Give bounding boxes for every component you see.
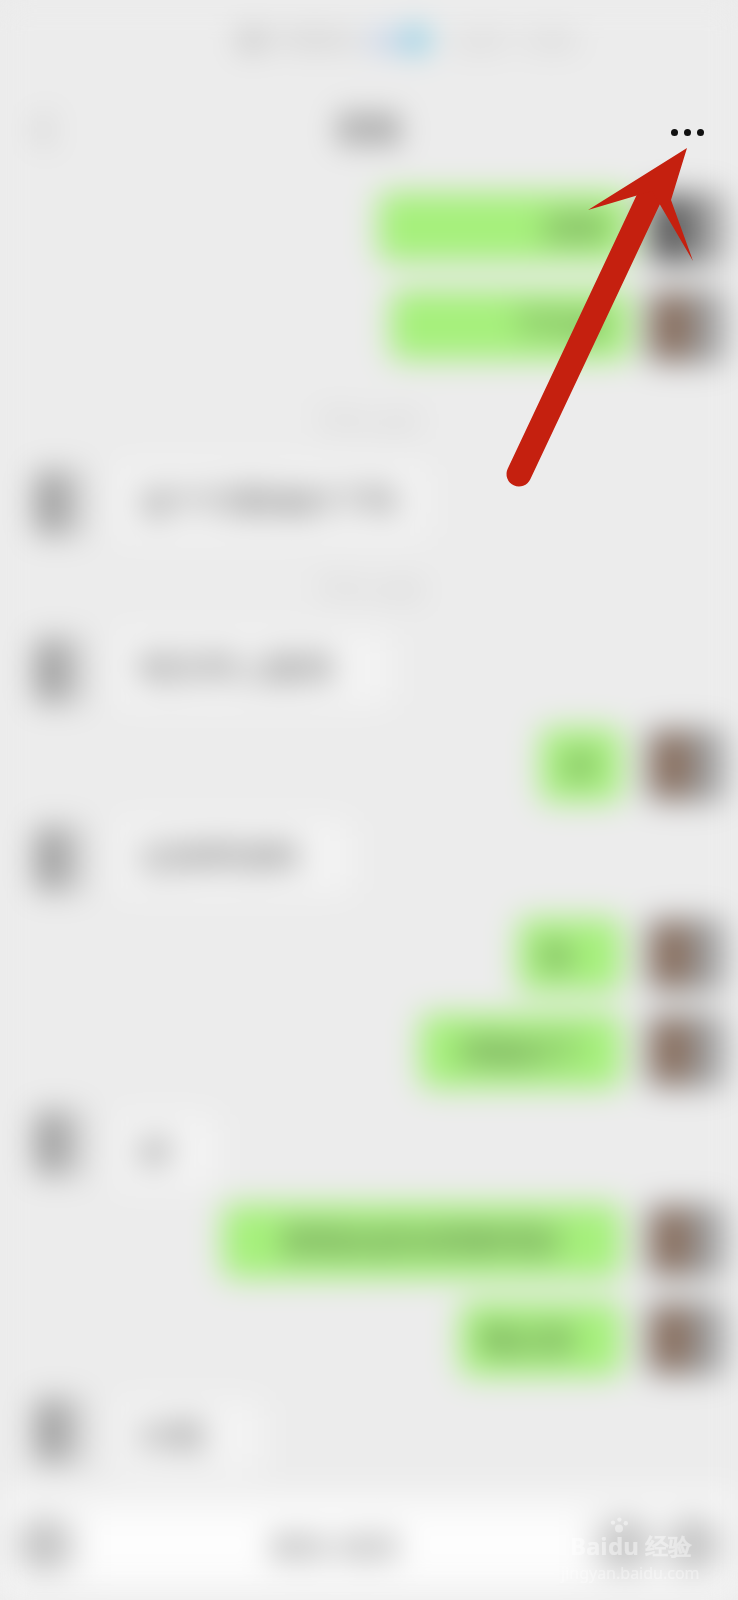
staticText: Bai: [570, 1529, 608, 1562]
staticText: 经验: [645, 1533, 691, 1562]
button[interactable]: More options: [652, 104, 722, 160]
button[interactable]: 明天早上要用: [114, 632, 392, 706]
button[interactable]: [32, 824, 86, 894]
staticText: 好的: [546, 208, 608, 247]
staticText: 准备好了: [459, 1032, 583, 1071]
staticText: 这个方案做好了吗: [140, 481, 396, 521]
button[interactable]: 下午好: [390, 290, 630, 360]
button[interactable]: [646, 728, 724, 802]
staticText: 下午好: [515, 306, 608, 345]
button[interactable]: More: [666, 1518, 720, 1572]
staticText: 好: [140, 1131, 172, 1171]
staticText: jingyan.baidu.com: [561, 1562, 700, 1584]
button[interactable]: [646, 290, 724, 364]
staticText: 明天早上要用: [140, 649, 332, 689]
staticText: 5G: [370, 25, 399, 55]
button[interactable]: [646, 918, 724, 992]
button[interactable]: [32, 636, 86, 706]
staticText: 按住 说话: [271, 1525, 399, 1566]
button[interactable]: 晚点发您: [460, 1302, 622, 1376]
button[interactable]: [32, 1108, 86, 1178]
button[interactable]: 知道: [518, 918, 622, 992]
button[interactable]: 好的: [378, 192, 630, 262]
button[interactable]: 记得带资料: [114, 820, 352, 894]
button[interactable]: [32, 1396, 86, 1466]
button[interactable]: 按住 说话: [88, 1513, 582, 1577]
button[interactable]: Emoji: [598, 1518, 652, 1572]
staticText: 记得带资料: [140, 837, 300, 877]
staticText: 晚点发您: [482, 1320, 600, 1359]
staticText: 好: [566, 746, 597, 785]
button[interactable]: [646, 1302, 724, 1376]
staticText: 行吧: [140, 1417, 204, 1457]
button[interactable]: [32, 468, 86, 538]
button[interactable]: [646, 1204, 724, 1278]
button[interactable]: 好: [540, 728, 622, 802]
button[interactable]: 那我先把东西整理好: [222, 1204, 622, 1278]
staticText: 那我先把东西整理好: [283, 1222, 562, 1261]
button[interactable]: 这个方案做好了吗: [114, 464, 426, 538]
staticText: 老板: [335, 107, 403, 150]
button[interactable]: [646, 1014, 724, 1088]
button[interactable]: Voice input: [18, 1518, 72, 1572]
button[interactable]: 好: [114, 1114, 218, 1188]
button[interactable]: [646, 192, 724, 266]
button[interactable]: 准备好了: [420, 1014, 622, 1088]
button[interactable]: 行吧: [114, 1400, 264, 1474]
staticText: du: [608, 1529, 639, 1562]
staticText: 知道: [540, 936, 600, 975]
